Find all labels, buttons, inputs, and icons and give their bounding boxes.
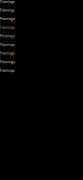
staticText: Flamingo	[0, 60, 15, 64]
staticText: Flamingo	[0, 17, 15, 21]
staticText: Flamingo	[0, 69, 15, 72]
staticText: Flamingo	[0, 9, 15, 12]
staticText: Flamingo	[0, 52, 15, 55]
staticText: Flamingo	[0, 34, 15, 38]
staticText: Flamingo	[0, 26, 15, 29]
staticText: Flamingo	[0, 0, 15, 4]
staticText: Flamingo	[0, 43, 15, 47]
